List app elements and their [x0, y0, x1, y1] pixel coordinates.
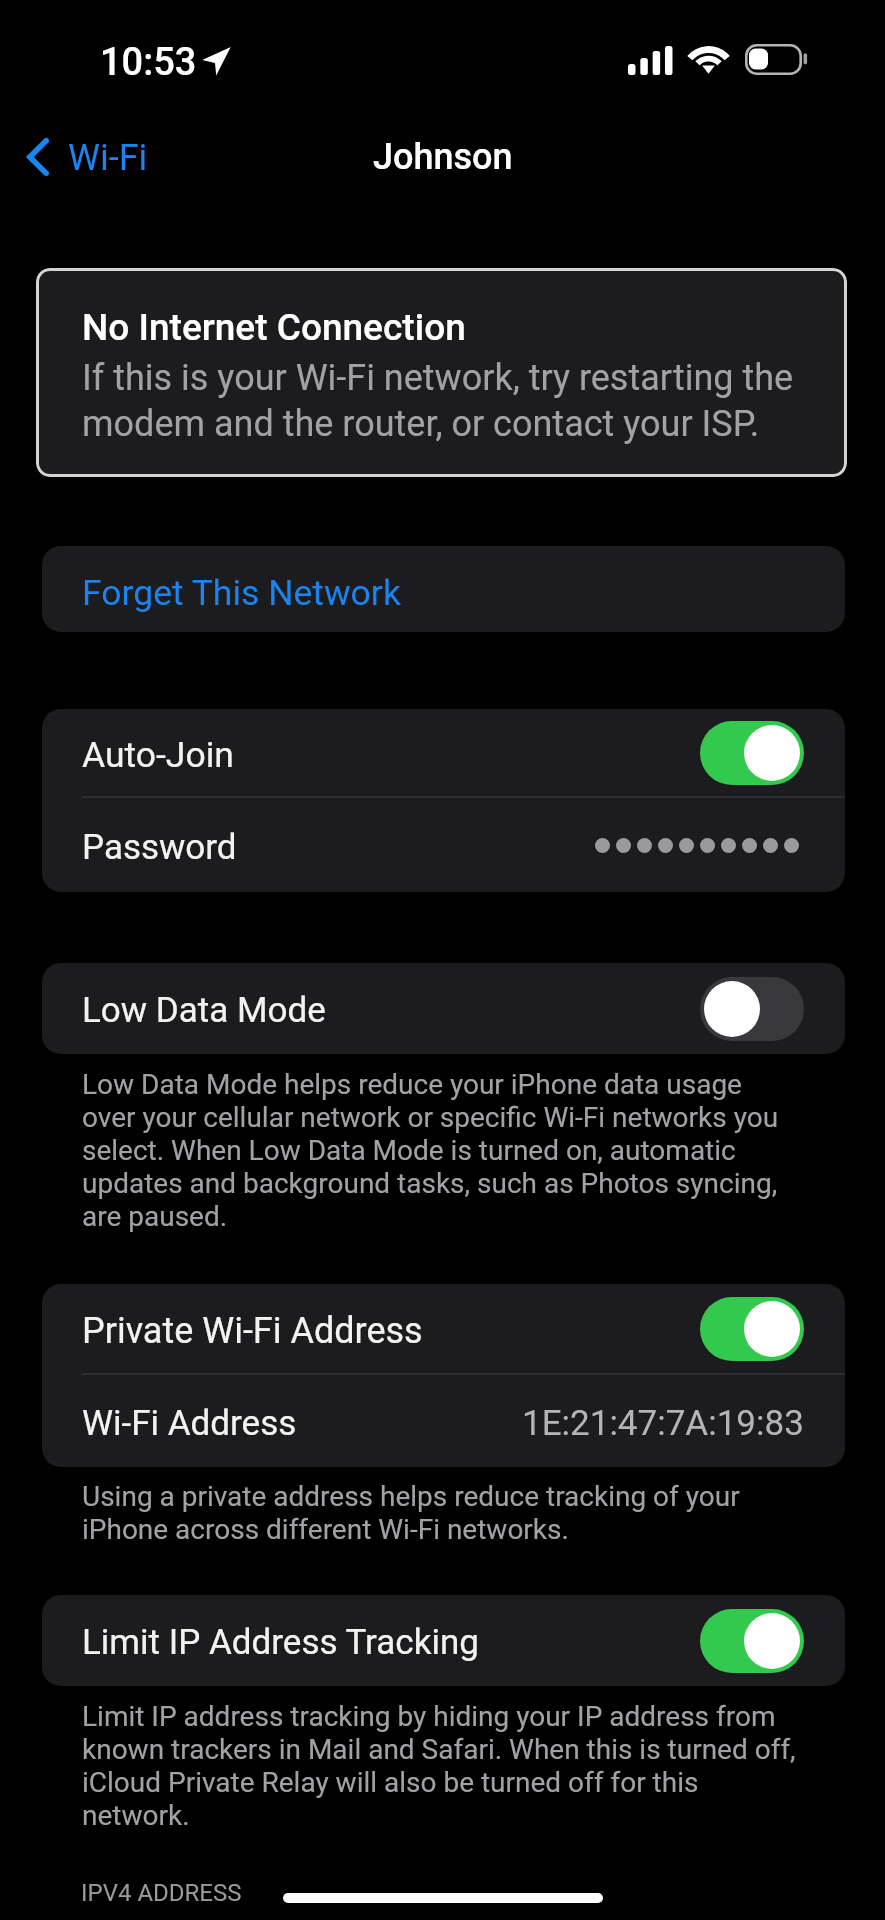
staticText: Auto-Join	[82, 734, 700, 776]
staticText: If this is your Wi-Fi network, try resta…	[82, 357, 802, 445]
button[interactable]: Password	[42, 798, 845, 892]
button[interactable]: Auto-Join	[42, 709, 845, 796]
button[interactable]: Limit IP Address Tracking	[42, 1595, 845, 1686]
staticText: No Internet Connection	[82, 306, 466, 349]
staticText: 1E:21:47:7A:19:83	[522, 1403, 804, 1444]
staticText: Limit IP Address Tracking	[82, 1622, 700, 1663]
staticText: Forget This Network	[82, 572, 401, 614]
button[interactable]: Back to Wi-Fi	[14, 126, 166, 188]
button[interactable]: Auto-Join on	[700, 721, 804, 785]
staticText: 10:53	[100, 40, 197, 85]
staticText: Johnson	[373, 136, 513, 178]
button[interactable]: Private Wi-Fi Address	[42, 1284, 845, 1373]
staticText: Wi-Fi Address	[82, 1403, 522, 1444]
staticText: Password	[82, 827, 595, 868]
staticText: Limit IP address tracking by hiding your…	[82, 1700, 812, 1832]
staticText: Private Wi-Fi Address	[82, 1310, 700, 1352]
button[interactable]: Low Data Mode	[42, 963, 845, 1054]
staticText: Wi-Fi	[68, 137, 148, 179]
button[interactable]: Wi-Fi Address	[42, 1375, 845, 1467]
staticText: Low Data Mode	[82, 990, 700, 1031]
staticText: Low Data Mode helps reduce your iPhone d…	[82, 1068, 797, 1233]
button[interactable]: Limit IP Address Tracking on	[700, 1609, 804, 1673]
staticText: IPV4 ADDRESS	[81, 1879, 242, 1907]
button[interactable]: Private Wi-Fi Address on	[700, 1297, 804, 1361]
button[interactable]: Forget This Network	[42, 546, 845, 632]
button[interactable]: Low Data Mode off	[700, 977, 804, 1041]
staticText: Using a private address helps reduce tra…	[82, 1480, 797, 1546]
